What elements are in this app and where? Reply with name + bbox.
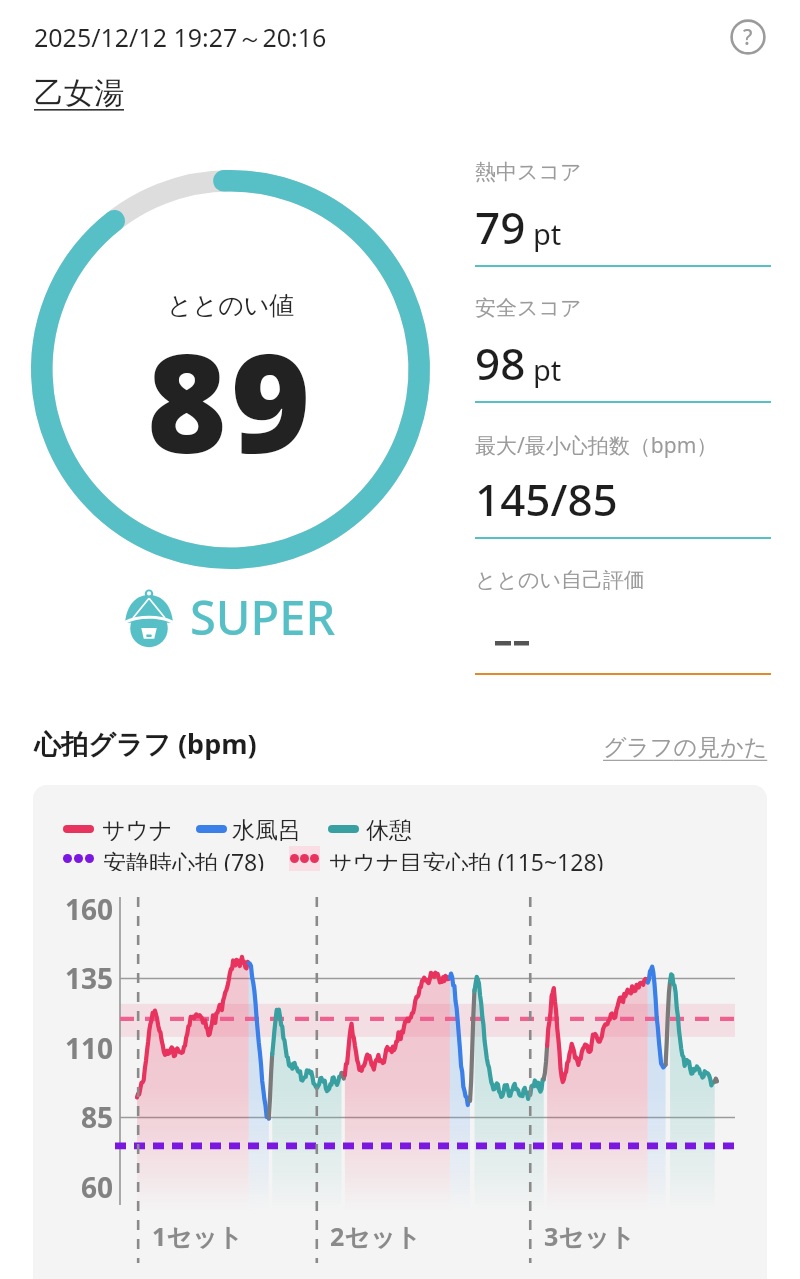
staticText: 安静時心拍 (78) [103, 846, 265, 871]
staticText: 熱中スコア [475, 159, 582, 185]
staticText: 85 [81, 1098, 114, 1136]
staticText: pt [533, 350, 562, 389]
staticText: 水風呂 [232, 816, 301, 841]
staticText: 安全スコア [475, 295, 582, 321]
staticText: 休憩 [366, 816, 412, 841]
button[interactable]: グラフの見かた [603, 733, 768, 762]
staticText: 2025/12/12 19:27～20:16 [34, 20, 327, 54]
staticText: 110 [65, 1029, 114, 1067]
button[interactable]: 乙女湯 [34, 74, 124, 112]
staticText: ? [743, 23, 753, 52]
staticText: SUPER [190, 585, 336, 649]
staticText: 89 [147, 308, 315, 493]
staticText: 79 [475, 197, 526, 257]
staticText: 1セット [152, 1219, 244, 1253]
staticText: 160 [65, 890, 114, 928]
button[interactable]: Help [724, 13, 772, 61]
staticText: ととのい値 [167, 290, 295, 321]
staticText: ととのい自己評価 [475, 567, 645, 593]
staticText: 98 [475, 333, 526, 393]
staticText: 心拍グラフ (bpm) [34, 725, 257, 762]
staticText: サウナ [102, 816, 173, 841]
staticText: サウナ目安心拍 (115~128) [329, 846, 604, 871]
staticText: 3セット [544, 1219, 636, 1253]
staticText: pt [533, 214, 562, 253]
staticText: 60 [81, 1168, 114, 1206]
staticText: 145/85 [475, 469, 618, 529]
staticText: 2セット [330, 1219, 422, 1253]
staticText: 135 [65, 959, 114, 997]
staticText: 乙女湯 [34, 74, 124, 112]
staticText: グラフの見かた [603, 733, 768, 762]
staticText: 最大/最小心拍数（bpm） [475, 431, 718, 460]
